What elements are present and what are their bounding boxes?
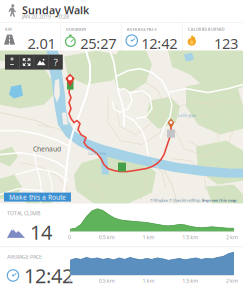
- staticText: JAN 20, 2019 · 10:28: [22, 13, 69, 20]
- button[interactable]: Map style: [34, 55, 48, 70]
- staticText: CALORIES BURNED: [188, 27, 225, 32]
- staticText: 14: [30, 219, 52, 245]
- staticText: Sunday Walk: [22, 3, 89, 17]
- staticText: 2 km: [226, 277, 238, 284]
- button[interactable]: Help: [49, 55, 63, 70]
- staticText: Improve this map: [202, 198, 237, 203]
- button[interactable]: Zoom: [5, 55, 19, 70]
- staticText: 0.5 km: [99, 234, 115, 241]
- staticText: 1 km: [142, 234, 154, 241]
- staticText: 2 km: [226, 234, 238, 241]
- staticText: Chenaud: [33, 145, 61, 153]
- staticText: 1 km: [142, 277, 154, 284]
- staticText: 0.5 km: [99, 277, 115, 284]
- staticText: © Mapbox © OpenStreetMap: [150, 198, 200, 203]
- staticText: 1.5 km: [182, 234, 198, 241]
- staticText: 12:42: [141, 34, 177, 53]
- staticText: 12:42: [24, 262, 73, 289]
- staticText: 0: [68, 277, 71, 284]
- staticText: 1.5 km: [182, 277, 198, 284]
- staticText: AVERAGE PACE: [127, 27, 157, 32]
- staticText: 0: [68, 234, 71, 241]
- staticText: ?: [54, 56, 58, 68]
- staticText: Make this a Route: [9, 193, 66, 202]
- staticText: La Dronne: [178, 113, 196, 118]
- button[interactable]: Make this a Route: [4, 193, 71, 202]
- staticText: 123: [214, 34, 238, 53]
- button[interactable]: Expand map: [20, 55, 34, 70]
- staticText: La Dronne: [88, 151, 106, 156]
- staticText: 2.01: [27, 34, 55, 53]
- staticText: AVERAGE PACE: [7, 253, 42, 260]
- staticText: 25:27: [80, 34, 116, 53]
- staticText: DURATION: [66, 27, 86, 32]
- staticText: KM: [5, 27, 12, 32]
- staticText: TOTAL CLIMB: [7, 210, 40, 217]
